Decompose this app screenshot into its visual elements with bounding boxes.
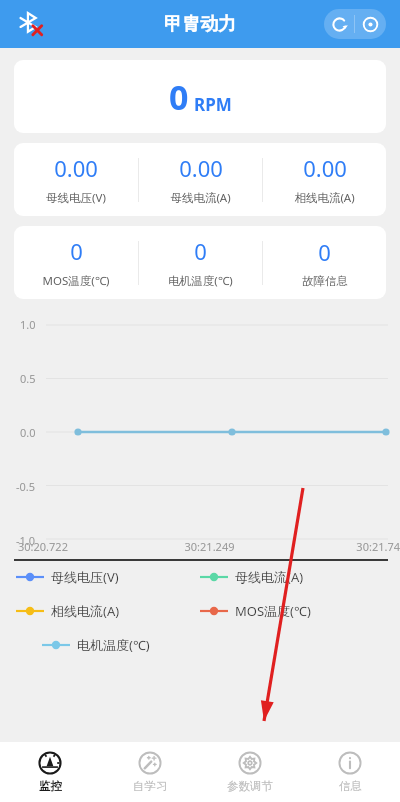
staticText: 监控 xyxy=(39,779,62,793)
staticText: 0.00 xyxy=(179,153,223,183)
staticText: 1.0 xyxy=(20,317,36,332)
button[interactable]: 监控 xyxy=(0,742,100,802)
staticText: 0.5 xyxy=(20,371,36,386)
button[interactable]: 母线电压(V) xyxy=(16,568,200,586)
staticText: 0 xyxy=(169,74,189,120)
staticText: 甲胄动力 xyxy=(164,13,236,36)
staticText: 自学习 xyxy=(133,779,168,793)
staticText: 母线电压(V) xyxy=(46,190,106,206)
button[interactable]: 0 xyxy=(14,226,138,299)
button[interactable]: Refresh xyxy=(324,9,354,39)
button[interactable]: Bluetooth disconnected xyxy=(10,4,50,44)
button[interactable]: 母线电流(A) xyxy=(200,568,384,586)
staticText: 0 xyxy=(318,237,331,267)
staticText: -0.5 xyxy=(16,479,36,494)
button[interactable]: 0.00 xyxy=(263,143,386,216)
button[interactable]: 相线电流(A) xyxy=(16,602,200,620)
staticText: RPM xyxy=(194,93,232,116)
button[interactable]: 自学习 xyxy=(100,742,200,802)
button[interactable]: 信息 xyxy=(300,742,400,802)
staticText: 信息 xyxy=(339,779,362,793)
staticText: 30:20.722 xyxy=(18,539,146,554)
staticText: 30:21.74 xyxy=(273,539,400,554)
staticText: 0.0 xyxy=(20,425,36,440)
staticText: -1.0 xyxy=(16,533,36,548)
staticText: 参数调节 xyxy=(227,779,273,793)
button[interactable]: Record xyxy=(355,9,386,39)
staticText: 母线电流(A) xyxy=(235,568,304,586)
staticText: 相线电流(A) xyxy=(51,602,120,620)
button[interactable]: 0 xyxy=(139,226,262,299)
staticText: 0 xyxy=(70,236,83,266)
staticText: 电机温度(℃) xyxy=(77,636,150,654)
staticText: 相线电流(A) xyxy=(294,190,355,206)
staticText: 0.00 xyxy=(303,153,347,183)
button[interactable]: 0.00 xyxy=(14,143,138,216)
staticText: MOS温度(℃) xyxy=(42,273,110,289)
button[interactable]: 0 xyxy=(263,226,386,299)
staticText: 30:21.249 xyxy=(146,539,273,554)
button[interactable]: 电机温度(℃) xyxy=(42,636,150,654)
button[interactable]: 0.00 xyxy=(139,143,262,216)
staticText: 母线电压(V) xyxy=(51,568,119,586)
button[interactable]: 参数调节 xyxy=(200,742,300,802)
staticText: 0.00 xyxy=(54,153,98,183)
staticText: 0 xyxy=(194,236,207,266)
staticText: 故障信息 xyxy=(302,274,348,288)
button[interactable]: 0 xyxy=(14,60,386,133)
button[interactable]: MOS温度(℃) xyxy=(200,602,384,620)
staticText: 电机温度(℃) xyxy=(168,273,233,289)
staticText: 母线电流(A) xyxy=(170,190,231,206)
staticText: MOS温度(℃) xyxy=(235,602,311,620)
